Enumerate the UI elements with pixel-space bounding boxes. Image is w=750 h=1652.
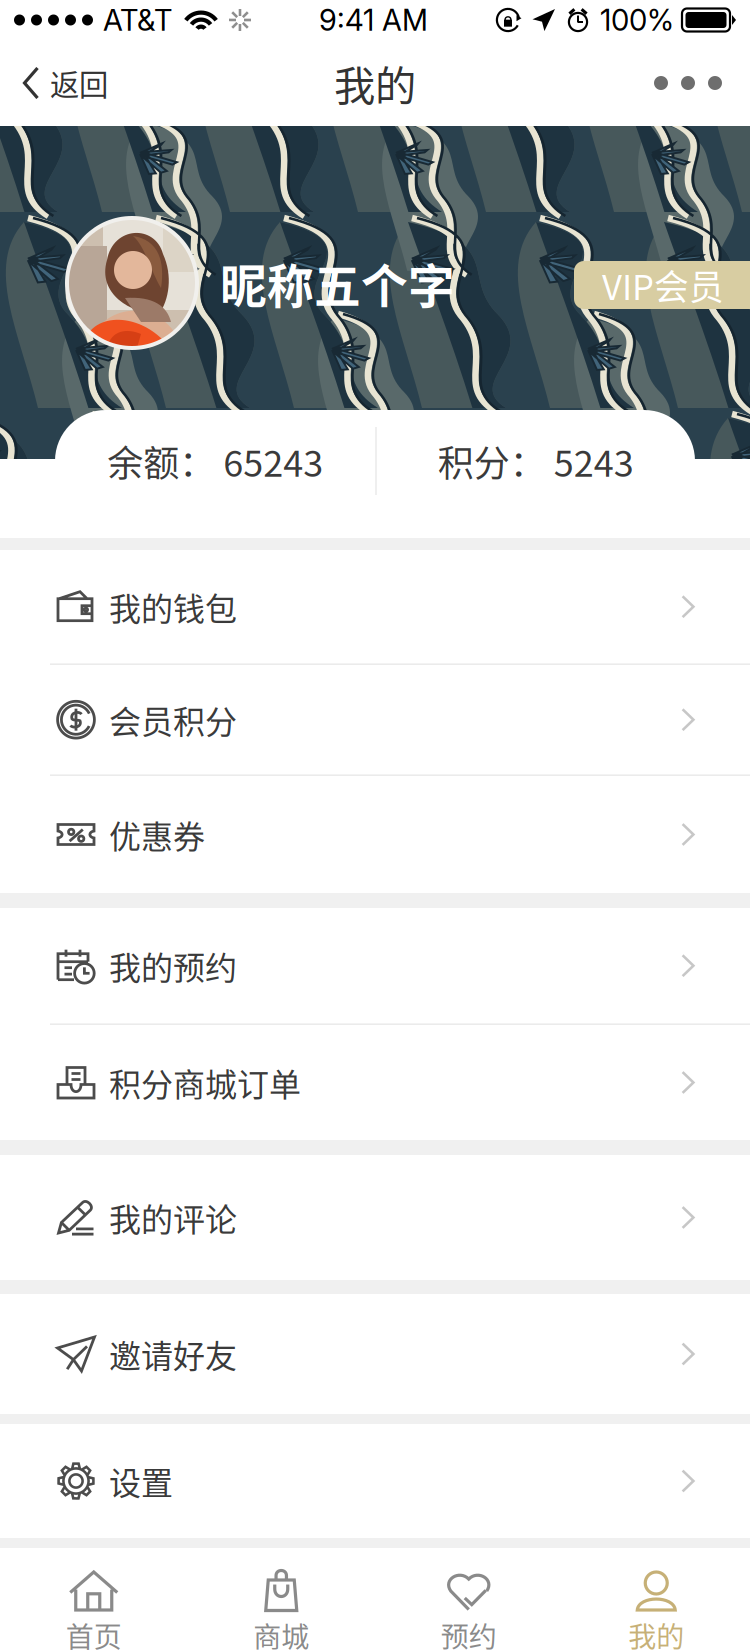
staticText: 我的	[334, 53, 416, 113]
staticText: 我的评论	[109, 1194, 237, 1241]
button[interactable]: VIP会员	[574, 261, 750, 309]
button[interactable]: 积分商城订单	[0, 1025, 750, 1140]
button[interactable]: 会员积分	[0, 665, 750, 776]
button[interactable]: 设置	[0, 1424, 750, 1538]
staticText: 预约	[441, 1615, 497, 1652]
staticText: 优惠券	[109, 811, 205, 858]
staticText: 我的	[628, 1615, 684, 1652]
staticText: 会员积分	[109, 696, 237, 743]
staticText: 9:41 AM	[319, 2, 428, 38]
staticText: AT&T	[103, 2, 172, 38]
staticText: 昵称五个字	[220, 249, 455, 317]
button[interactable]: 更多	[626, 40, 750, 126]
staticText: 返回	[50, 62, 108, 104]
button[interactable]: 优惠券	[0, 776, 750, 893]
button[interactable]: 我的预约	[0, 908, 750, 1025]
button[interactable]: 首页	[0, 1548, 187, 1652]
staticText: 100%	[600, 2, 674, 38]
button[interactable]: 积分： 5243	[377, 410, 695, 512]
staticText: 设置	[109, 1458, 173, 1504]
button[interactable]: 返回	[0, 40, 122, 126]
button[interactable]: 邀请好友	[0, 1294, 750, 1414]
button[interactable]: 余额： 65243	[55, 410, 375, 512]
staticText: 首页	[66, 1615, 122, 1652]
staticText: 余额： 65243	[107, 435, 323, 487]
staticText: 我的钱包	[109, 583, 237, 630]
staticText: 积分商城订单	[109, 1059, 301, 1106]
staticText: VIP会员	[602, 260, 724, 310]
button[interactable]: 预约	[375, 1548, 562, 1652]
button[interactable]: 商城	[187, 1548, 375, 1652]
staticText: 商城	[253, 1615, 309, 1652]
button[interactable]: 我的	[562, 1548, 750, 1652]
button[interactable]: 我的钱包	[0, 550, 750, 665]
staticText: 我的预约	[109, 942, 237, 989]
staticText: 积分： 5243	[438, 435, 634, 487]
button[interactable]: 我的评论	[0, 1155, 750, 1280]
staticText: 邀请好友	[109, 1331, 237, 1377]
